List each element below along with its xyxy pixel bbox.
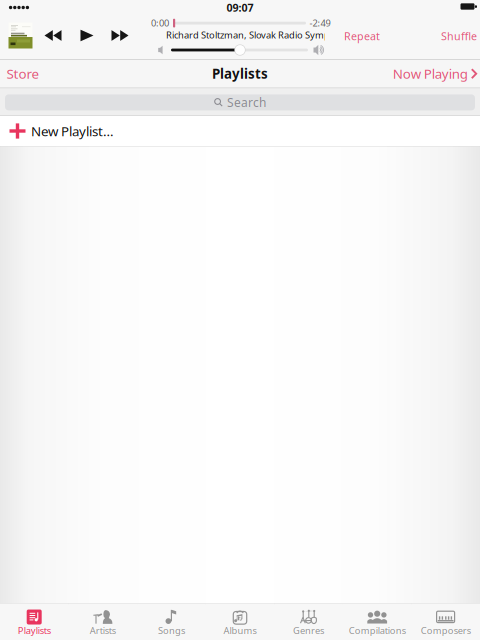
button[interactable]: Playlists [0, 603, 68, 640]
button[interactable]: Songs [137, 603, 206, 640]
button[interactable]: Rewind [44, 30, 61, 41]
button[interactable]: Store [0, 61, 47, 87]
staticText: Compilations [349, 624, 406, 637]
staticText: Albums [223, 624, 256, 637]
staticText: -2:49 [309, 17, 330, 29]
staticText: Richard Stoltzman, Slovak Radio Symphc [166, 29, 340, 41]
staticText: Shuffle [441, 29, 477, 43]
staticText: Search [227, 94, 266, 110]
staticText: Artists [90, 624, 116, 637]
staticText: Songs [158, 624, 185, 637]
staticText: Repeat [344, 29, 380, 43]
staticText: 0:00 [151, 17, 169, 29]
staticText: 09:07 [226, 0, 253, 15]
button[interactable]: Search [5, 94, 475, 110]
staticText: Playlists [18, 624, 51, 637]
staticText: Now Playing [393, 65, 468, 82]
button[interactable]: Now Playing [386, 61, 480, 87]
staticText: Composers [421, 624, 471, 637]
button[interactable]: Artists [68, 603, 137, 640]
staticText: Genres [293, 624, 324, 637]
button[interactable]: Play [80, 30, 93, 41]
button[interactable]: New Playlist… [0, 116, 480, 146]
button[interactable]: Repeat [338, 25, 386, 47]
button[interactable]: Compilations [343, 603, 411, 640]
button[interactable]: Genres [274, 603, 343, 640]
button[interactable]: Fast forward [111, 30, 128, 41]
button[interactable]: Albums [206, 603, 274, 640]
button[interactable]: Composers [411, 603, 480, 640]
staticText: New Playlist… [31, 122, 114, 140]
staticText: Playlists [212, 65, 268, 82]
button[interactable]: Shuffle [435, 25, 480, 47]
staticText: Store [6, 65, 39, 82]
